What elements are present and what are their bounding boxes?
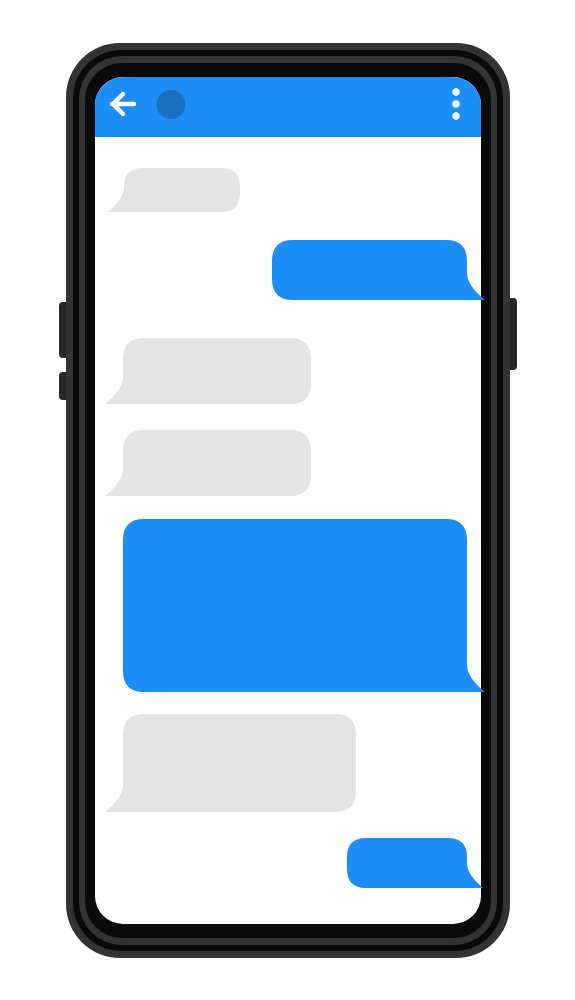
button[interactable]: Sent message: [272, 240, 472, 304]
button[interactable]: Received message: [110, 430, 315, 500]
button[interactable]: Received message: [110, 714, 360, 816]
button[interactable]: Contact profile: [150, 84, 192, 126]
button[interactable]: More options: [436, 84, 478, 126]
button[interactable]: Received message: [110, 168, 245, 216]
button[interactable]: Back: [103, 84, 145, 126]
button[interactable]: Received message: [110, 338, 315, 408]
button[interactable]: Sent message: [347, 838, 472, 892]
button[interactable]: Sent message: [123, 519, 473, 696]
